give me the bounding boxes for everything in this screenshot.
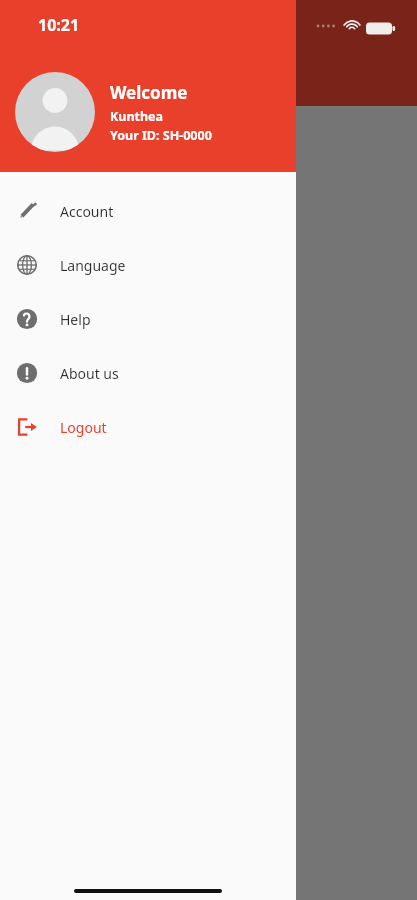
button[interactable]: Payment xyxy=(14,292,403,478)
button[interactable]: Welcome xyxy=(15,72,212,152)
button[interactable]: About us xyxy=(0,346,296,400)
button[interactable]: Help xyxy=(0,292,296,346)
staticText: Account xyxy=(60,202,114,221)
button[interactable]: Account xyxy=(0,184,296,238)
staticText: About us xyxy=(60,364,119,383)
staticText: 10:21 xyxy=(38,14,80,36)
staticText: Delivery xyxy=(14,620,403,638)
staticText: Logout xyxy=(60,418,107,437)
button[interactable]: Logout xyxy=(0,400,296,454)
button[interactable]: Language xyxy=(0,238,296,292)
staticText: Your ID: SH-0000 xyxy=(110,127,212,144)
button[interactable]: Delivery xyxy=(14,492,403,678)
staticText: Help xyxy=(60,310,91,329)
staticText: Payment xyxy=(14,420,403,438)
other: Logout xyxy=(16,416,38,438)
staticText: Kunthea xyxy=(110,108,164,125)
staticText: Language xyxy=(60,256,126,275)
button[interactable] xyxy=(14,114,403,278)
staticText: Welcome xyxy=(110,81,188,104)
